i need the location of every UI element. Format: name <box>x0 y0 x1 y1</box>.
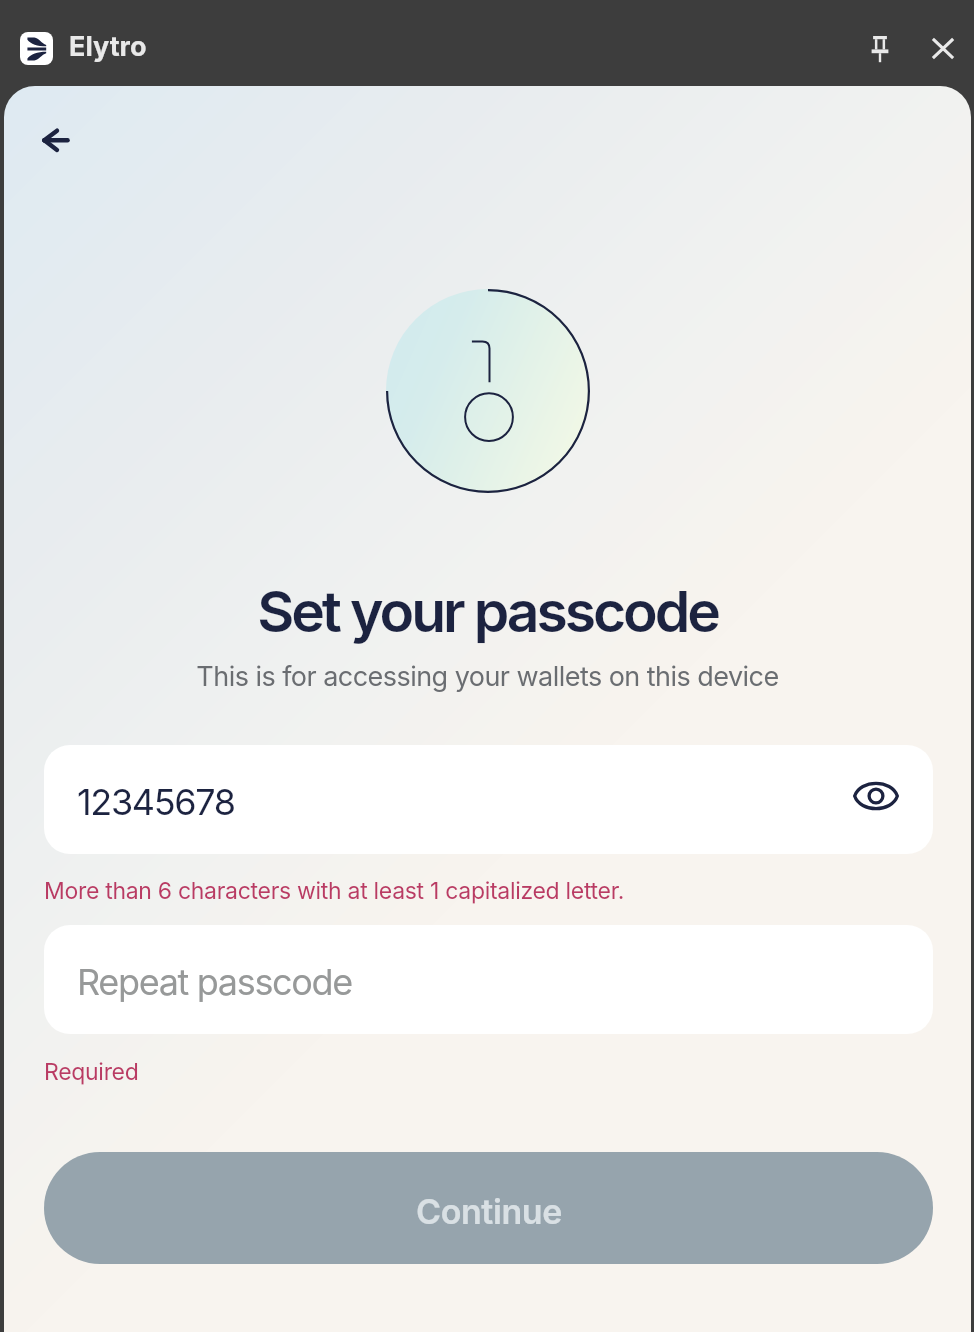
button[interactable]: Close <box>919 24 967 72</box>
staticText: 12345678 <box>77 780 235 824</box>
staticText: Required <box>44 1058 139 1086</box>
staticText: Repeat passcode <box>77 960 352 1004</box>
staticText: More than 6 characters with at least 1 c… <box>44 877 624 905</box>
staticText: Continue <box>416 1191 562 1232</box>
button[interactable]: Continue <box>44 1152 933 1264</box>
button[interactable]: Repeat passcode <box>44 925 933 1034</box>
staticText: This is for accessing your wallets on th… <box>196 660 779 693</box>
staticText: Set your passcode <box>257 577 718 646</box>
staticText: Elytro <box>69 30 147 63</box>
button[interactable]: Back <box>32 118 80 166</box>
button[interactable]: Show passcode <box>852 772 900 820</box>
button[interactable]: 12345678 <box>44 745 933 854</box>
button[interactable]: Pin window <box>856 25 904 73</box>
